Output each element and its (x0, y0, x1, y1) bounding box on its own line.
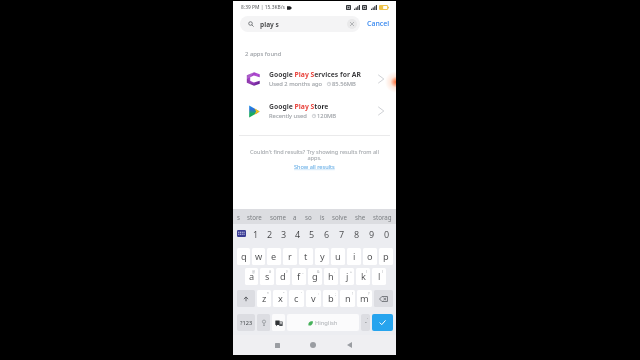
staticText: i (353, 250, 356, 263)
other: Open app info (376, 74, 386, 84)
staticText: 1 (253, 228, 259, 240)
button[interactable]: l (372, 268, 386, 285)
button[interactable]: y (315, 248, 329, 265)
other: Open app info (376, 106, 386, 116)
button[interactable]: Home (304, 336, 322, 354)
button[interactable]: j (340, 268, 354, 285)
button[interactable]: 1 (249, 224, 263, 243)
staticText: o (367, 250, 373, 263)
button[interactable]: she (354, 211, 367, 223)
button[interactable]: Google Play Services for AR (233, 69, 396, 88)
staticText: solve (332, 213, 347, 221)
button[interactable]: m (357, 290, 372, 307)
staticText: 8:39 PM | 15.3KB/s (241, 4, 285, 11)
button[interactable]: 8 (349, 224, 364, 243)
button[interactable]: t (299, 248, 313, 265)
button[interactable]: q (237, 248, 250, 265)
button[interactable]: u (331, 248, 345, 265)
button[interactable]: p (379, 248, 393, 265)
button[interactable]: g (308, 268, 322, 285)
button[interactable]: k (356, 268, 370, 285)
button[interactable]: 2 (263, 224, 277, 243)
button[interactable]: e (267, 248, 281, 265)
button[interactable]: store (246, 211, 263, 223)
staticText: b (328, 292, 334, 305)
staticText: s (265, 270, 270, 283)
staticText: f (297, 270, 301, 283)
button[interactable]: 0 (379, 224, 394, 243)
staticText: - (334, 269, 336, 274)
button[interactable]: 5 (305, 224, 319, 243)
button[interactable]: so (304, 211, 313, 223)
staticText: v (311, 292, 316, 305)
button[interactable]: Translate (272, 314, 285, 331)
button[interactable]: Floating bubble (385, 71, 396, 93)
button[interactable]: Hinglish (287, 314, 359, 331)
staticText: t (304, 250, 308, 263)
button[interactable]: Enter (372, 314, 393, 331)
button[interactable]: c (289, 290, 304, 307)
staticText: Couldn't find results? Try showing resul… (247, 148, 382, 162)
button[interactable]: v (306, 290, 321, 307)
button[interactable]: a (245, 268, 258, 285)
staticText: + (350, 269, 352, 274)
button[interactable]: x (273, 290, 287, 307)
button[interactable]: d (276, 268, 290, 285)
button[interactable]: w (252, 248, 265, 265)
button[interactable]: s (260, 268, 274, 285)
button[interactable]: Recents (268, 336, 286, 354)
staticText: h (328, 270, 334, 283)
button[interactable]: b (323, 290, 338, 307)
staticText: . (365, 316, 367, 326)
staticText: 2 apps found (245, 50, 282, 58)
staticText: ) (382, 269, 384, 274)
staticText: 8 (354, 228, 360, 240)
button[interactable]: Backspace (374, 290, 393, 307)
button[interactable]: Show all results (291, 162, 338, 172)
staticText: Google Play Store (269, 102, 329, 111)
button[interactable]: f (292, 268, 306, 285)
button[interactable]: a (292, 211, 298, 223)
button[interactable]: 9 (364, 224, 379, 243)
button[interactable]: , (361, 314, 370, 331)
button[interactable]: n (340, 290, 355, 307)
button[interactable]: s (236, 211, 241, 223)
staticText: 5 (309, 228, 315, 240)
button[interactable]: Clear search (347, 19, 357, 29)
staticText: 85.56MB (332, 80, 356, 88)
staticText: Recently used (269, 112, 307, 120)
button[interactable]: play s (240, 16, 360, 32)
staticText: ₹ (286, 269, 288, 274)
staticText: Used 2 months ago (269, 80, 322, 88)
button[interactable]: 7 (334, 224, 349, 243)
button[interactable]: ?123 (237, 314, 255, 331)
button[interactable]: Back (340, 336, 358, 354)
staticText: d (280, 270, 286, 283)
button[interactable]: r (283, 248, 297, 265)
staticText: ( (366, 269, 368, 274)
button[interactable]: 4 (291, 224, 305, 243)
staticText: 6 (324, 228, 330, 240)
button[interactable]: solve (331, 211, 348, 223)
button[interactable]: some (269, 211, 287, 223)
button[interactable]: h (324, 268, 338, 285)
staticText: Cancel (367, 19, 390, 29)
staticText: Google Play Services for AR (269, 70, 361, 79)
button[interactable]: i (347, 248, 361, 265)
button[interactable]: z (257, 290, 271, 307)
staticText: ! (352, 291, 353, 296)
button[interactable]: Google Play Store (233, 101, 396, 120)
staticText: 4 (295, 228, 301, 240)
staticText: & (317, 269, 320, 274)
button[interactable]: Cancel (360, 14, 396, 34)
button[interactable]: Switch keyboard (233, 224, 249, 243)
button[interactable]: Shift (237, 290, 255, 307)
staticText: a (293, 213, 297, 221)
button[interactable]: o (363, 248, 377, 265)
staticText: 7 (339, 228, 345, 240)
button[interactable]: is (319, 211, 326, 223)
button[interactable]: 6 (319, 224, 334, 243)
button[interactable]: 3 (277, 224, 291, 243)
button[interactable]: Voice input (257, 314, 270, 331)
button[interactable]: storag (372, 211, 393, 223)
